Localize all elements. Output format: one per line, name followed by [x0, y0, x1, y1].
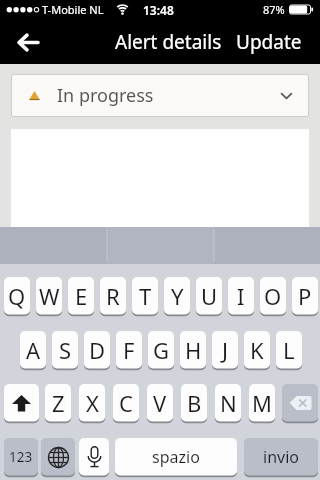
- staticText: Z: [52, 388, 65, 418]
- staticText: Update: [236, 29, 302, 55]
- staticText: C: [119, 388, 133, 418]
- button[interactable]: G: [148, 331, 174, 369]
- button[interactable]: K: [244, 331, 270, 369]
- button[interactable]: 123: [4, 438, 38, 476]
- staticText: M: [252, 388, 272, 418]
- button[interactable]: [282, 384, 318, 422]
- button[interactable]: [4, 384, 39, 422]
- staticText: In progress: [57, 83, 154, 108]
- button[interactable]: F: [116, 331, 142, 369]
- staticText: invio: [263, 446, 299, 468]
- button[interactable]: S: [52, 331, 78, 369]
- staticText: R: [106, 281, 120, 311]
- button[interactable]: U: [196, 277, 222, 315]
- staticText: N: [220, 388, 237, 418]
- button[interactable]: J: [212, 331, 238, 369]
- staticText: 87%: [263, 2, 285, 17]
- button[interactable]: Update: [228, 20, 302, 64]
- button[interactable]: R: [100, 277, 126, 315]
- button[interactable]: spazio: [115, 438, 237, 476]
- button[interactable]: N: [215, 384, 241, 422]
- button[interactable]: [6, 22, 50, 62]
- staticText: I: [237, 281, 245, 311]
- button[interactable]: invio: [244, 438, 318, 476]
- button[interactable]: X: [79, 384, 105, 422]
- staticText: Y: [171, 281, 184, 311]
- button[interactable]: P: [292, 277, 318, 315]
- staticText: F: [123, 335, 135, 365]
- button[interactable]: In progress: [11, 74, 309, 117]
- staticText: spazio: [152, 446, 200, 468]
- staticText: L: [283, 335, 295, 365]
- button[interactable]: C: [113, 384, 139, 422]
- button[interactable]: B: [181, 384, 207, 422]
- staticText: J: [222, 335, 229, 365]
- button[interactable]: Y: [164, 277, 190, 315]
- button[interactable]: M: [249, 384, 275, 422]
- staticText: P: [298, 281, 312, 311]
- staticText: W: [39, 281, 60, 311]
- staticText: V: [153, 388, 167, 418]
- button[interactable]: D: [84, 331, 110, 369]
- staticText: X: [86, 388, 99, 418]
- button[interactable]: T: [132, 277, 158, 315]
- staticText: 13:48: [143, 2, 174, 18]
- button[interactable]: O: [260, 277, 286, 315]
- staticText: Alert details: [115, 29, 222, 55]
- button[interactable]: H: [180, 331, 206, 369]
- button[interactable]: Q: [4, 277, 30, 315]
- staticText: O: [264, 281, 282, 311]
- staticText: D: [89, 335, 106, 365]
- staticText: H: [185, 335, 202, 365]
- staticText: A: [26, 335, 41, 365]
- staticText: K: [250, 335, 264, 365]
- button[interactable]: A: [20, 331, 46, 369]
- staticText: G: [153, 335, 170, 365]
- staticText: 123: [9, 448, 33, 466]
- staticText: T: [139, 281, 152, 311]
- button[interactable]: [79, 438, 109, 476]
- staticText: Q: [8, 281, 26, 311]
- button[interactable]: [41, 438, 75, 476]
- staticText: B: [187, 388, 202, 418]
- button[interactable]: I: [228, 277, 254, 315]
- button[interactable]: W: [36, 277, 62, 315]
- button[interactable]: L: [276, 331, 302, 369]
- staticText: S: [59, 335, 72, 365]
- staticText: T-Mobile NL: [42, 2, 104, 17]
- button[interactable]: V: [147, 384, 173, 422]
- staticText: E: [75, 281, 88, 311]
- button[interactable]: E: [68, 277, 94, 315]
- button[interactable]: Z: [45, 384, 71, 422]
- staticText: U: [201, 281, 218, 311]
